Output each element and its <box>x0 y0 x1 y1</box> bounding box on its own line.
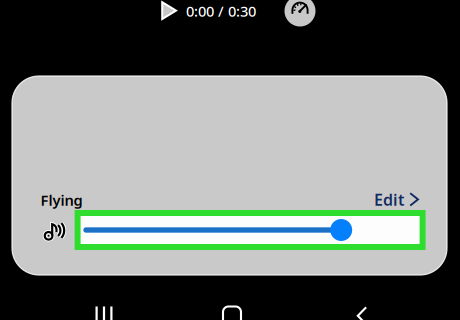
button[interactable]: Edit <box>374 189 420 210</box>
button[interactable]: Play <box>161 1 177 20</box>
staticText: 0:00 / 0:30 <box>186 1 256 21</box>
button[interactable]: Back <box>356 306 367 320</box>
button[interactable]: Playback speed <box>284 0 315 26</box>
staticText: Flying <box>40 190 82 210</box>
staticText: Edit <box>374 189 404 210</box>
button[interactable]: Recent apps <box>95 306 112 320</box>
button[interactable]: Home <box>223 306 241 320</box>
